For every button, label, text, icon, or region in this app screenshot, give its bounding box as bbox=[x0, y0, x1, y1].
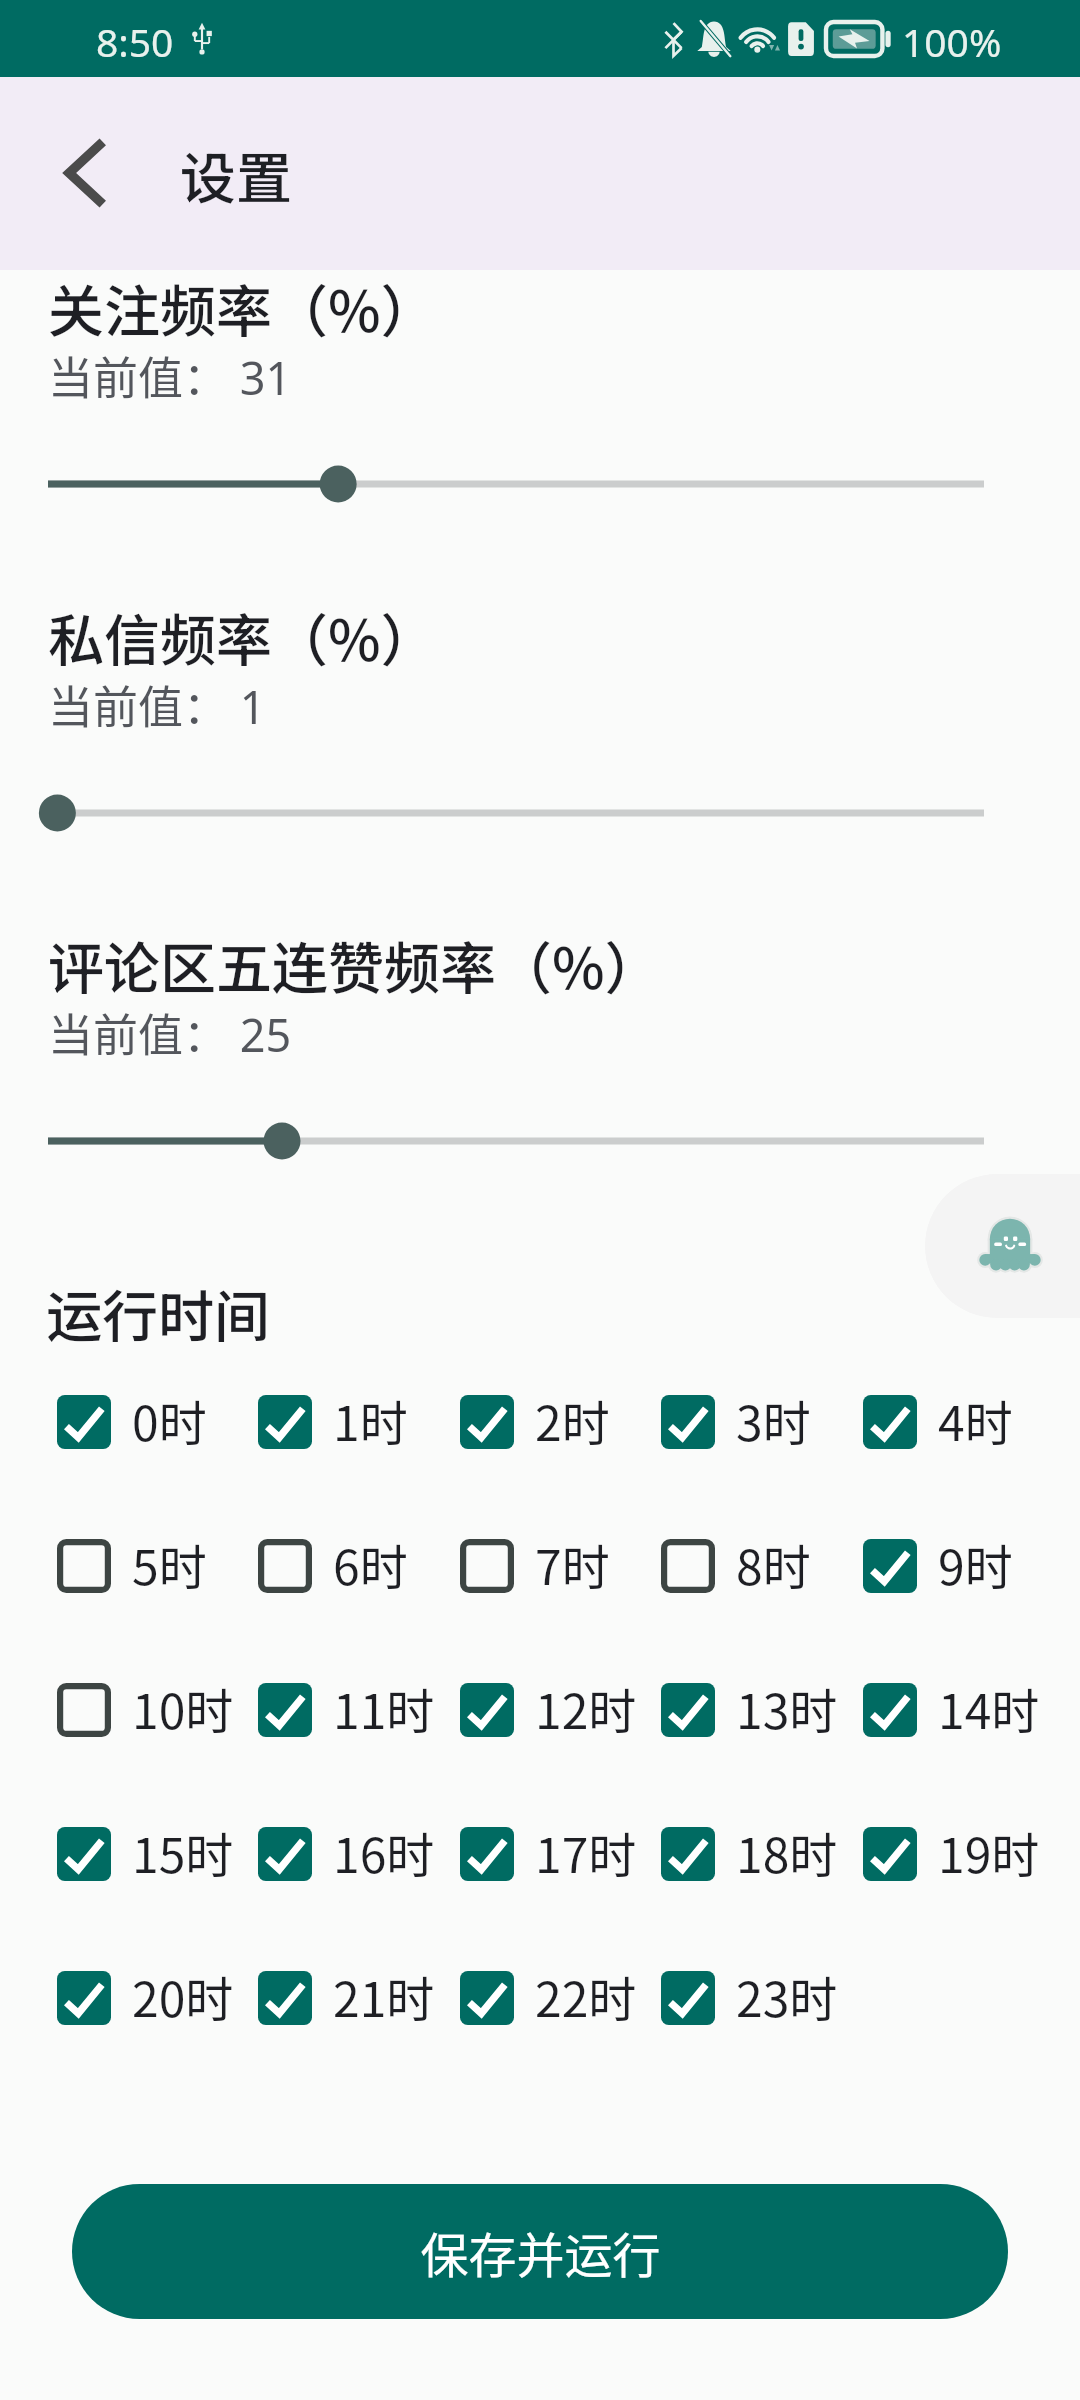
staticText: 2时 bbox=[535, 1385, 610, 1455]
button[interactable]: 19时 bbox=[863, 1813, 1049, 1895]
button[interactable]: 5时 bbox=[57, 1525, 243, 1607]
button[interactable]: Back bbox=[47, 132, 129, 214]
button[interactable]: 18时 bbox=[661, 1813, 847, 1895]
staticText: 1时 bbox=[333, 1385, 408, 1455]
staticText: 5时 bbox=[132, 1529, 207, 1599]
staticText: 0时 bbox=[132, 1385, 207, 1455]
button[interactable]: 23时 bbox=[661, 1957, 847, 2039]
staticText: 10时 bbox=[132, 1673, 234, 1743]
button[interactable]: 2时 bbox=[460, 1381, 646, 1463]
staticText: 4时 bbox=[938, 1385, 1013, 1455]
staticText: 19时 bbox=[938, 1817, 1040, 1887]
staticText: 22时 bbox=[535, 1961, 637, 2031]
staticText: 当前值： 1 bbox=[48, 672, 266, 737]
staticText: 设置 bbox=[180, 134, 292, 215]
button[interactable]: 12时 bbox=[460, 1669, 646, 1751]
button[interactable]: 13时 bbox=[661, 1669, 847, 1751]
button[interactable]: 1时 bbox=[258, 1381, 444, 1463]
staticText: 11时 bbox=[333, 1673, 435, 1743]
button[interactable]: 17时 bbox=[460, 1813, 646, 1895]
staticText: 12时 bbox=[535, 1673, 637, 1743]
staticText: 14时 bbox=[938, 1673, 1040, 1743]
button[interactable]: 9时 bbox=[863, 1525, 1049, 1607]
button[interactable]: 7时 bbox=[460, 1525, 646, 1607]
button[interactable]: 6时 bbox=[258, 1525, 444, 1607]
staticText: 当前值： 31 bbox=[48, 343, 292, 408]
button[interactable]: 4时 bbox=[863, 1381, 1049, 1463]
button[interactable]: 8时 bbox=[661, 1525, 847, 1607]
button[interactable]: 11时 bbox=[258, 1669, 444, 1751]
staticText: 9时 bbox=[938, 1529, 1013, 1599]
button[interactable]: 3时 bbox=[661, 1381, 847, 1463]
button[interactable]: 10时 bbox=[57, 1669, 243, 1751]
staticText: 8:50 bbox=[96, 15, 174, 68]
staticText: 当前值： 25 bbox=[48, 1000, 292, 1065]
staticText: 23时 bbox=[736, 1961, 838, 2031]
button[interactable]: 0时 bbox=[57, 1381, 243, 1463]
button[interactable]: 21时 bbox=[258, 1957, 444, 2039]
staticText: 6时 bbox=[333, 1529, 408, 1599]
button[interactable]: 20时 bbox=[57, 1957, 243, 2039]
staticText: 8时 bbox=[736, 1529, 811, 1599]
button[interactable]: 22时 bbox=[460, 1957, 646, 2039]
staticText: 关注频率（%） bbox=[48, 267, 437, 348]
button[interactable]: 15时 bbox=[57, 1813, 243, 1895]
staticText: 20时 bbox=[132, 1961, 234, 2031]
staticText: 私信频率（%） bbox=[48, 596, 437, 677]
staticText: 16时 bbox=[333, 1817, 435, 1887]
button[interactable]: 14时 bbox=[863, 1669, 1049, 1751]
staticText: 评论区五连赞频率（%） bbox=[48, 924, 661, 1005]
staticText: 18时 bbox=[736, 1817, 838, 1887]
staticText: 3时 bbox=[736, 1385, 811, 1455]
button[interactable]: 保存并运行 bbox=[72, 2184, 1008, 2319]
staticText: 13时 bbox=[736, 1673, 838, 1743]
staticText: 100% bbox=[902, 15, 1002, 68]
staticText: 21时 bbox=[333, 1961, 435, 2031]
button[interactable]: 16时 bbox=[258, 1813, 444, 1895]
button[interactable]: Assistant bbox=[925, 1174, 1080, 1318]
staticText: 7时 bbox=[535, 1529, 610, 1599]
staticText: 保存并运行 bbox=[420, 2217, 661, 2287]
staticText: 17时 bbox=[535, 1817, 637, 1887]
staticText: 运行时间 bbox=[46, 1272, 270, 1353]
staticText: 15时 bbox=[132, 1817, 234, 1887]
